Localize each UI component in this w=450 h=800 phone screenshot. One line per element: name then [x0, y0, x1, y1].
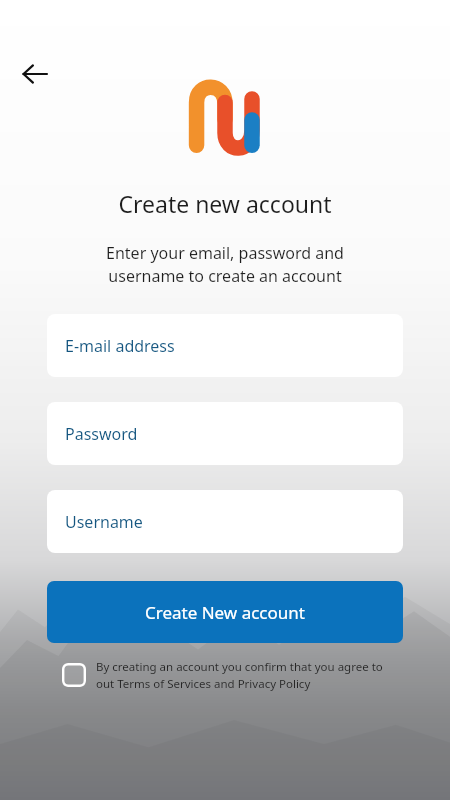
staticText: Password	[65, 423, 138, 445]
staticText: Create New account	[145, 601, 305, 624]
staticText: By creating an account you confirm that …	[96, 659, 383, 691]
staticText: E-mail address	[65, 335, 175, 357]
staticText: Enter your email, password and username …	[106, 242, 344, 287]
button[interactable]: E-mail address	[47, 314, 403, 377]
button[interactable]: Username	[47, 490, 403, 553]
staticText: Username	[65, 511, 143, 533]
staticText: Create new account	[118, 188, 332, 219]
button[interactable]: Password	[47, 402, 403, 465]
button[interactable]: Create New account	[47, 581, 403, 643]
button[interactable]: Back	[11, 50, 59, 98]
button[interactable]: By creating an account you confirm that …	[62, 659, 410, 691]
